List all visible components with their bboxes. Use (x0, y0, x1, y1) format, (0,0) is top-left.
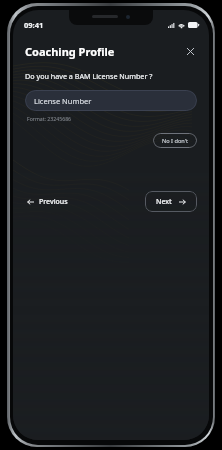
staticText: Coaching Profile (25, 44, 115, 59)
button[interactable]: Previous (25, 192, 70, 212)
staticText: Format: 23245686 (27, 115, 72, 122)
staticText: Previous (39, 197, 68, 207)
staticText: Do you have a BAM License Number ? (25, 71, 153, 81)
button[interactable]: Next (145, 191, 197, 212)
button[interactable]: No I don't (153, 133, 197, 148)
button[interactable]: Close (183, 44, 197, 58)
staticText: License Number (34, 96, 92, 106)
staticText: 09:41 (24, 20, 44, 30)
staticText: No I don't (162, 137, 188, 145)
staticText: Next (156, 197, 172, 207)
button[interactable]: License Number (25, 90, 197, 111)
